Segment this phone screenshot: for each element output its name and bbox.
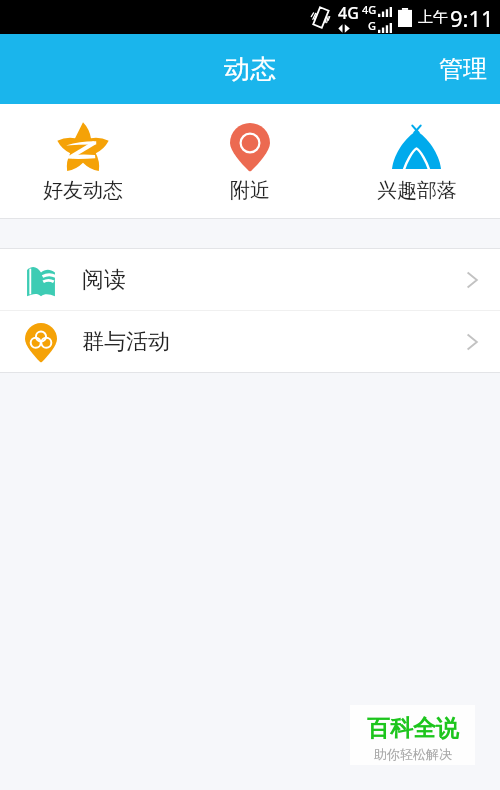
staticText: 动态 xyxy=(224,53,276,86)
staticText: 9:11 xyxy=(450,3,494,33)
other: Open 群与活动 xyxy=(461,331,483,353)
staticText: G xyxy=(368,18,376,33)
staticText: 4G xyxy=(362,2,377,17)
button[interactable]: 好友动态 xyxy=(0,104,166,218)
button[interactable]: 管理 xyxy=(423,40,500,98)
staticText: 百科全说 xyxy=(367,714,459,743)
staticText: 4G xyxy=(338,2,359,24)
button[interactable]: 附近 xyxy=(166,104,333,218)
staticText: 附近 xyxy=(230,178,270,203)
button[interactable]: 兴趣部落 xyxy=(333,104,500,218)
staticText: 上午 xyxy=(418,8,448,27)
staticText: 助你轻松解决 xyxy=(374,746,452,762)
staticText: 管理 xyxy=(439,54,487,84)
staticText: 兴趣部落 xyxy=(377,178,457,203)
staticText: 好友动态 xyxy=(43,178,123,203)
staticText: 群与活动 xyxy=(82,328,170,356)
button[interactable]: 阅读 xyxy=(0,249,500,310)
other: Open 阅读 xyxy=(461,269,483,291)
staticText: 阅读 xyxy=(82,266,126,294)
button[interactable]: 群与活动 xyxy=(0,311,500,372)
